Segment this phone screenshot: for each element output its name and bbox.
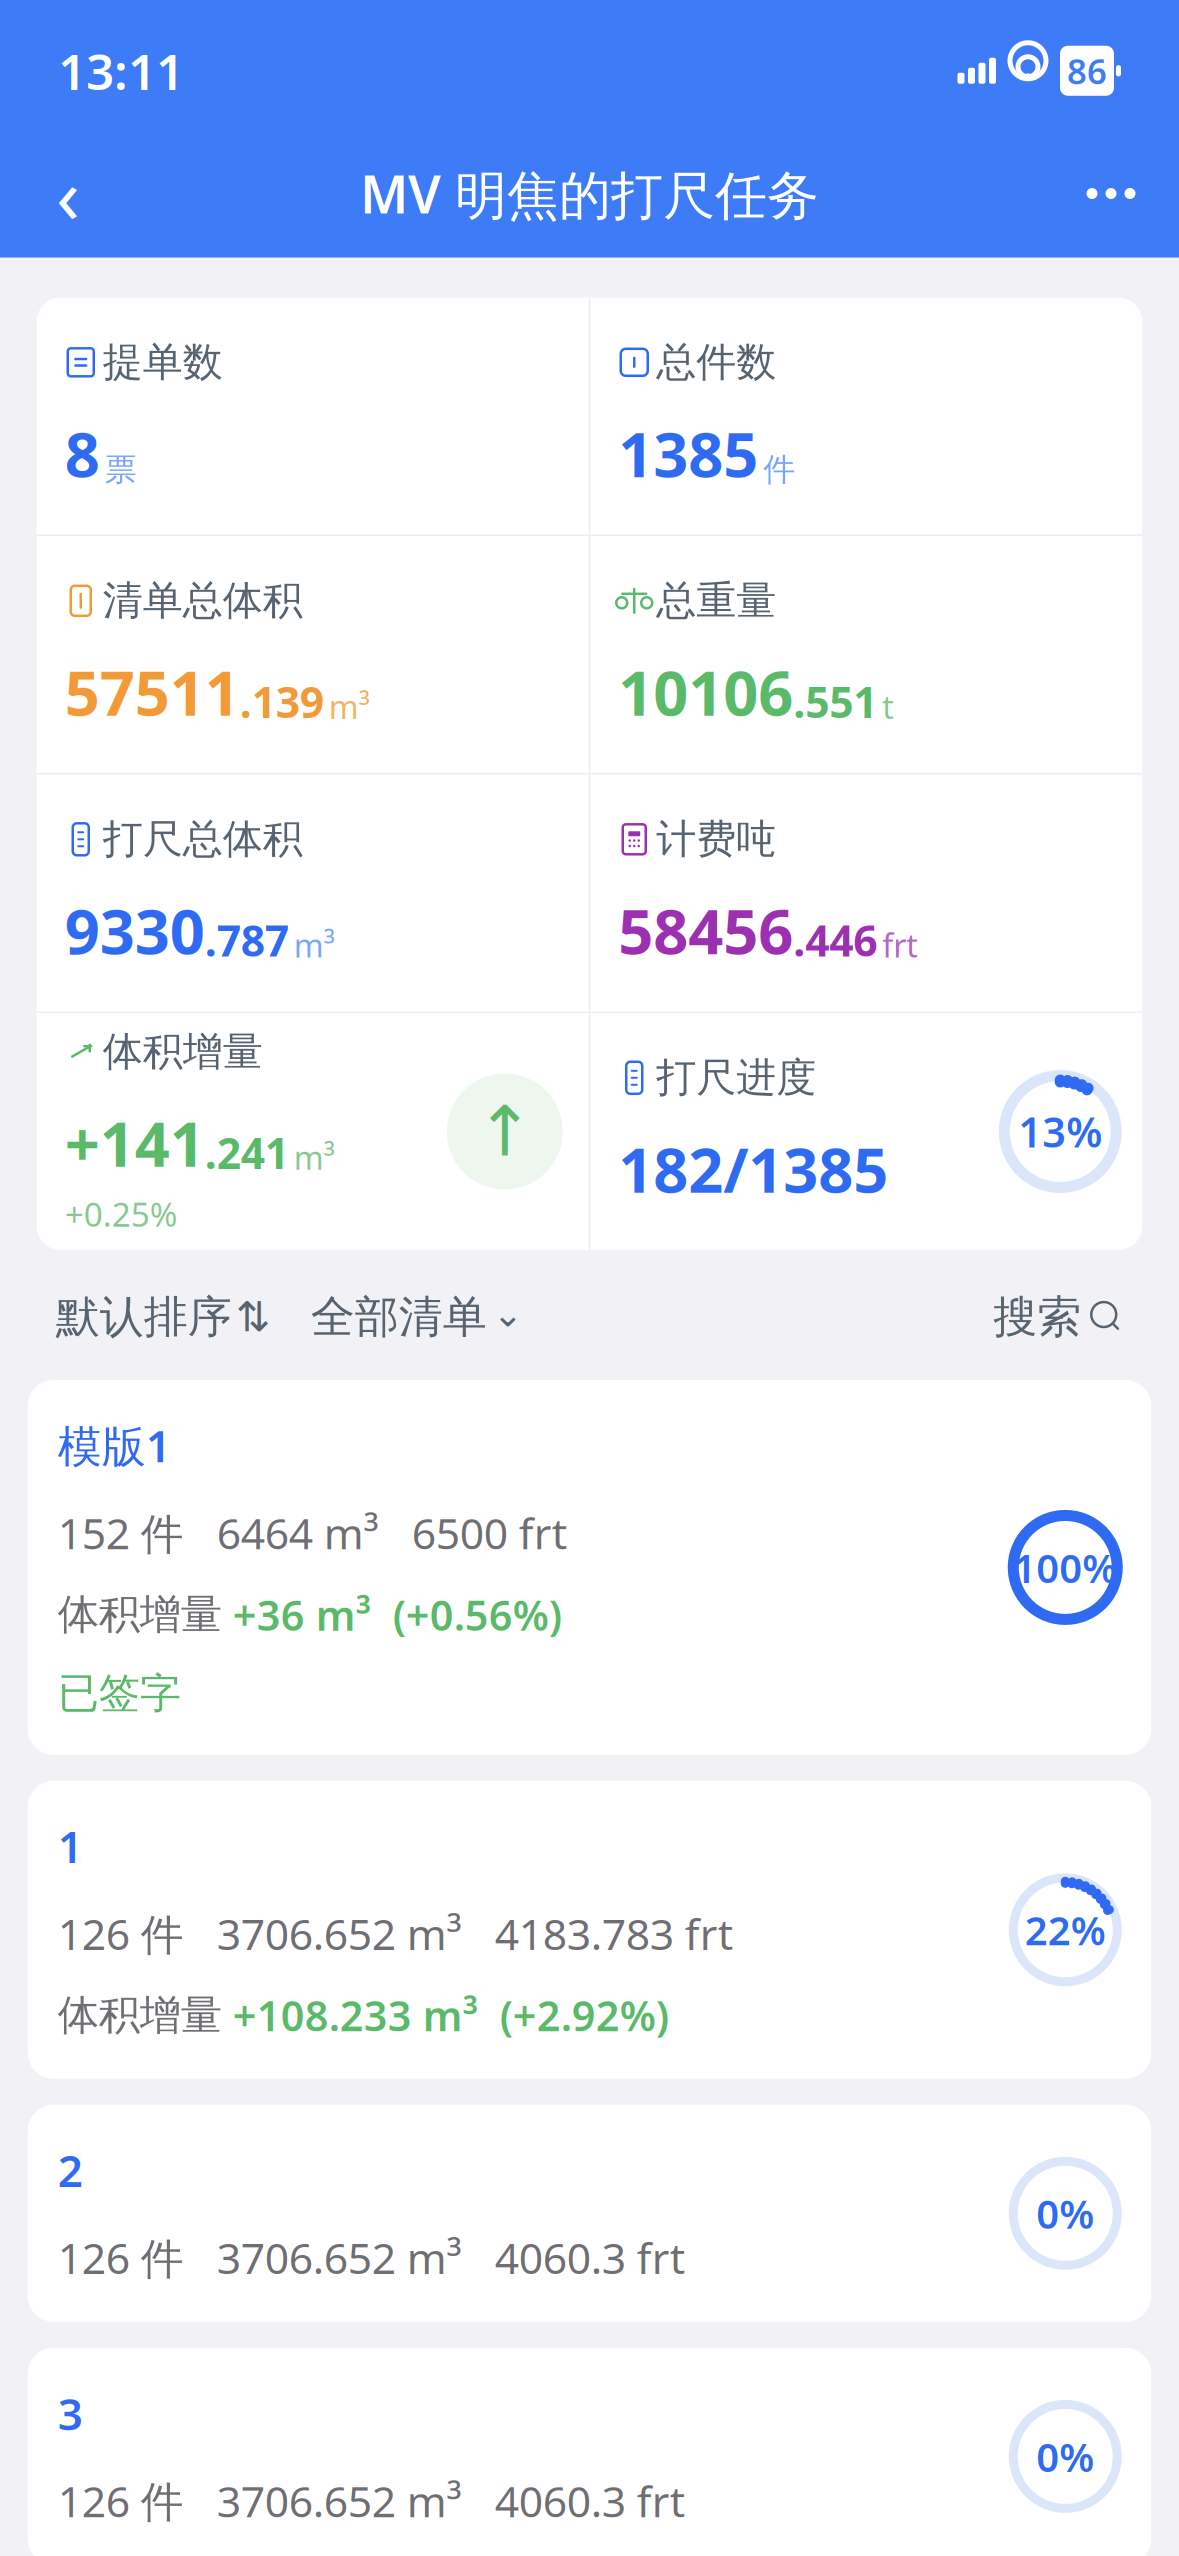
staticText: ‹ [56,142,80,245]
staticText: 打尺进度 [656,1053,816,1102]
staticText: 86 [1067,48,1107,94]
staticText: m³ [294,1136,335,1179]
staticText: 126 件 [58,2472,184,2529]
staticText: .241 [205,1124,289,1181]
staticText: 计费吨 [656,815,776,864]
staticText: 2 [58,2141,83,2199]
staticText: 57511 [65,651,240,733]
staticText: MV 明焦的打尺任务 [360,159,819,228]
staticText: 100% [1013,1541,1117,1594]
staticText: 总件数 [656,338,776,387]
staticText: .446 [793,912,877,968]
staticText: ↑ [476,1092,534,1171]
staticText: 搜索 [993,1290,1081,1344]
staticText: .787 [205,912,289,968]
staticText: 58456 [618,890,793,971]
staticText: 9330 [65,890,205,971]
staticText: 6464 m³ [184,1504,379,1561]
button[interactable]: Back [26,151,110,235]
staticText: m³ [294,924,335,966]
staticText: 22% [1025,1903,1106,1956]
button[interactable]: 模版1 [28,1380,1151,1755]
staticText: 152 件 [58,1504,184,1561]
staticText: 打尺总体积 [103,815,303,864]
staticText: 1 [58,1817,83,1875]
staticText: +108.233 m³ (+2.92%) [222,1988,669,2043]
staticText: 件 [763,450,795,489]
staticText: +36 m³ (+0.56%) [222,1587,562,1642]
button[interactable]: More options [1069,151,1153,235]
staticText: 10106 [618,651,793,733]
staticText: 提单数 [103,338,223,387]
button[interactable]: 搜索 [993,1272,1123,1362]
button[interactable]: 2 [28,2105,1151,2322]
staticText: 4060.3 frt [462,2472,685,2529]
staticText: ⌄ [493,1294,523,1334]
staticText: 126 件 [58,1905,184,1962]
staticText: .139 [240,673,324,730]
staticText: 4183.783 frt [462,1905,733,1962]
staticText: 1385 [618,413,758,494]
staticText: t [882,685,894,728]
staticText: ⇅ [236,1294,271,1340]
staticText: 体积增量 [58,1589,222,1640]
staticText: 3706.652 m³ [184,1905,462,1962]
staticText: +141 [65,1102,205,1184]
staticText: 3 [58,2384,83,2442]
staticText: m³ [329,685,370,728]
button[interactable]: 默认排序 [56,1272,271,1362]
staticText: 总重量 [656,576,776,625]
staticText: 票 [105,450,137,489]
staticText: 3706.652 m³ [184,2229,462,2286]
staticText: 默认排序 [56,1290,232,1344]
staticText: 126 件 [58,2229,184,2286]
staticText: 已签字 [58,1668,181,1719]
staticText: 体积增量 [58,1990,222,2041]
staticText: 清单总体积 [103,576,303,625]
staticText: 模版1 [58,1416,171,1474]
staticText: 13:11 [58,38,184,103]
staticText: 0% [1036,2430,1094,2483]
staticText: 0% [1036,2187,1094,2240]
staticText: frt [882,924,918,966]
staticText: 8 [65,413,100,494]
staticText: 体积增量 [103,1027,263,1076]
button[interactable]: 1 [28,1781,1151,2079]
staticText: +0.25% [65,1192,178,1236]
staticText: 4060.3 frt [462,2229,685,2286]
staticText: 6500 frt [379,1504,567,1561]
staticText: 3706.652 m³ [184,2472,462,2529]
staticText: 182/1385 [618,1128,888,1210]
staticText: 全部清单 [311,1290,487,1344]
button[interactable]: 全部清单 [311,1272,523,1362]
staticText: .551 [793,673,877,730]
button[interactable]: 3 [28,2348,1151,2556]
staticText: 13% [1018,1104,1102,1159]
